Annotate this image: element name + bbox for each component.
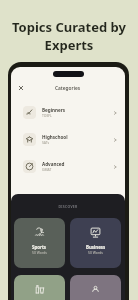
staticText: 50 Words bbox=[32, 250, 47, 255]
staticText: Beginners bbox=[42, 107, 66, 113]
staticText: Business bbox=[86, 244, 106, 250]
button[interactable]: Food bbox=[14, 275, 65, 300]
button[interactable]: Highschool bbox=[11, 126, 125, 153]
staticText: GMAT bbox=[42, 167, 52, 172]
staticText: Highschool bbox=[42, 134, 68, 140]
button[interactable]: Beginners bbox=[11, 99, 125, 126]
button[interactable]: Sports bbox=[14, 218, 65, 268]
staticText: DISCOVER bbox=[11, 204, 125, 209]
staticText: Topics Curated by Experts bbox=[0, 18, 138, 54]
staticText: 50 Words bbox=[88, 250, 103, 255]
staticText: Sports bbox=[32, 244, 47, 250]
staticText: TOEFL bbox=[42, 113, 52, 118]
staticText: SATs bbox=[42, 140, 50, 145]
staticText: Advanced bbox=[42, 161, 65, 167]
button[interactable]: Advanced bbox=[11, 153, 125, 180]
button[interactable]: Close bbox=[14, 81, 28, 95]
button[interactable]: Travel bbox=[70, 275, 121, 300]
button[interactable]: Business bbox=[70, 218, 121, 268]
staticText: Categories bbox=[55, 85, 81, 92]
